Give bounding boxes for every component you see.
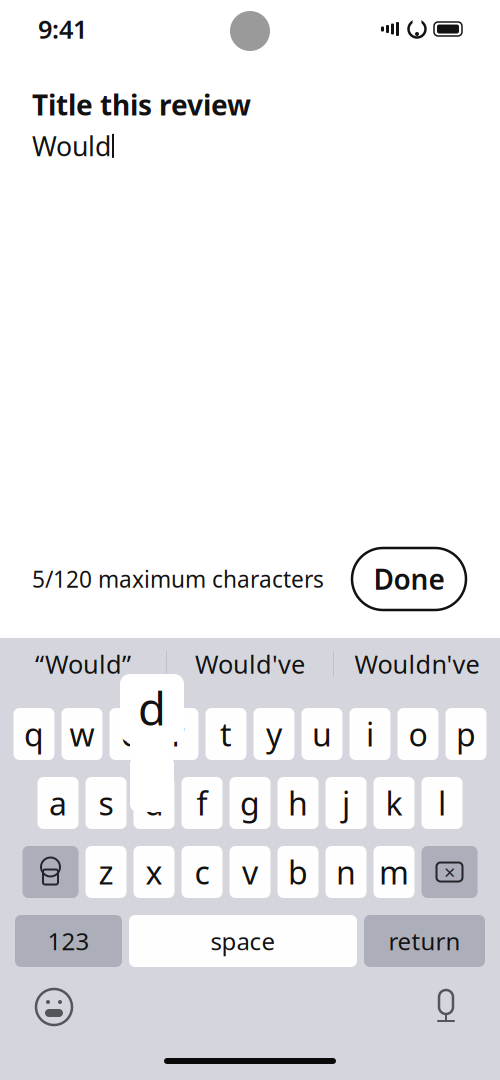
staticText: o	[408, 713, 427, 755]
button[interactable]: i	[349, 708, 390, 760]
button[interactable]: u	[301, 708, 342, 760]
button[interactable]: o	[397, 708, 438, 760]
staticText: w	[69, 713, 94, 755]
staticText: f	[196, 782, 207, 824]
button[interactable]: d	[133, 777, 174, 829]
button[interactable]: Done	[352, 548, 466, 610]
button[interactable]: s	[85, 777, 126, 829]
staticText: e	[121, 713, 139, 755]
staticText: i	[366, 713, 374, 755]
staticText: 5/120 maximum characters	[32, 564, 324, 594]
button[interactable]: t	[205, 708, 246, 760]
button[interactable]: e	[109, 708, 150, 760]
button[interactable]: f	[181, 777, 222, 829]
staticText: p	[456, 713, 476, 755]
staticText: Would've	[195, 647, 305, 681]
staticText: l	[438, 782, 446, 824]
staticText: 123	[47, 925, 89, 957]
button[interactable]: Emoji	[28, 981, 80, 1033]
staticText: return	[388, 925, 460, 957]
staticText: v	[242, 851, 258, 893]
staticText: n	[336, 851, 356, 893]
staticText: y	[266, 713, 282, 755]
button[interactable]: l	[421, 777, 462, 829]
staticText: d	[144, 782, 164, 824]
button[interactable]: v	[229, 846, 270, 898]
staticText: Title this review	[32, 86, 251, 123]
button[interactable]: x	[133, 846, 174, 898]
button[interactable]: c	[181, 846, 222, 898]
button[interactable]: r	[157, 708, 198, 760]
staticText: t	[220, 713, 232, 755]
button[interactable]: b	[277, 846, 318, 898]
button[interactable]: a	[37, 777, 78, 829]
button[interactable]: g	[229, 777, 270, 829]
staticText: ×	[444, 859, 455, 885]
staticText: Wouldn've	[354, 647, 479, 681]
button[interactable]: q	[13, 708, 54, 760]
staticText: q	[24, 713, 44, 755]
staticText: Done	[373, 560, 444, 598]
button[interactable]: h	[277, 777, 318, 829]
staticText: x	[145, 851, 162, 893]
staticText: b	[288, 851, 308, 893]
button[interactable]: Would've	[167, 641, 333, 687]
button[interactable]: n	[325, 846, 366, 898]
staticText: space	[210, 925, 275, 957]
button[interactable]: y	[253, 708, 294, 760]
staticText: “Would”	[35, 647, 131, 681]
staticText: c	[194, 851, 209, 893]
button[interactable]: Shift	[22, 846, 78, 898]
staticText: g	[240, 782, 260, 824]
staticText: d	[138, 678, 166, 738]
button[interactable]: “Would”	[0, 641, 166, 687]
button[interactable]: return	[364, 915, 485, 967]
button[interactable]: Dictate	[420, 981, 472, 1033]
button[interactable]: k	[373, 777, 414, 829]
button[interactable]: w	[61, 708, 102, 760]
button[interactable]: z	[85, 846, 126, 898]
staticText: s	[98, 782, 113, 824]
staticText: k	[385, 782, 402, 824]
staticText: j	[342, 782, 350, 824]
staticText: u	[312, 713, 332, 755]
staticText: 9:41	[38, 12, 87, 46]
button[interactable]: m	[373, 846, 414, 898]
staticText: m	[379, 851, 409, 893]
staticText: h	[288, 782, 308, 824]
button[interactable]: space	[129, 915, 357, 967]
button[interactable]: j	[325, 777, 366, 829]
staticText: z	[98, 851, 113, 893]
staticText: Would	[32, 128, 111, 164]
button[interactable]: Delete	[421, 846, 477, 898]
button[interactable]: p	[445, 708, 486, 760]
staticText: r	[171, 713, 184, 755]
button[interactable]: Wouldn've	[334, 641, 500, 687]
staticText: a	[49, 782, 67, 824]
button[interactable]: 123	[15, 915, 122, 967]
